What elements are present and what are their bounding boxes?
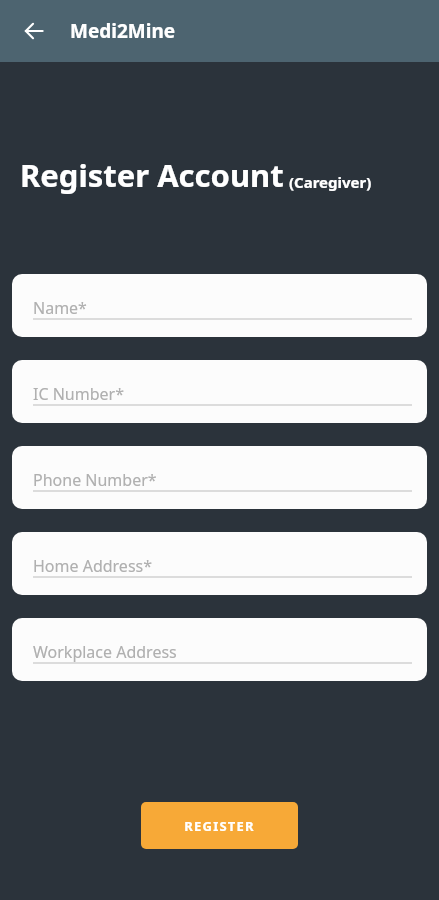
- staticText: Medi2Mine: [70, 18, 176, 44]
- button[interactable]: Workplace Address: [12, 618, 427, 681]
- staticText: (Caregiver): [289, 172, 372, 192]
- button[interactable]: REGISTER: [141, 802, 298, 849]
- staticText: IC Number*: [33, 383, 124, 405]
- staticText: Name*: [33, 297, 87, 319]
- button[interactable]: Back: [18, 15, 50, 47]
- button[interactable]: Name*: [12, 274, 427, 337]
- staticText: Register Account: [20, 154, 284, 196]
- button[interactable]: Phone Number*: [12, 446, 427, 509]
- button[interactable]: Home Address*: [12, 532, 427, 595]
- staticText: Phone Number*: [33, 469, 157, 491]
- staticText: Workplace Address: [33, 641, 177, 663]
- staticText: Home Address*: [33, 555, 153, 577]
- staticText: REGISTER: [184, 817, 255, 835]
- button[interactable]: IC Number*: [12, 360, 427, 423]
